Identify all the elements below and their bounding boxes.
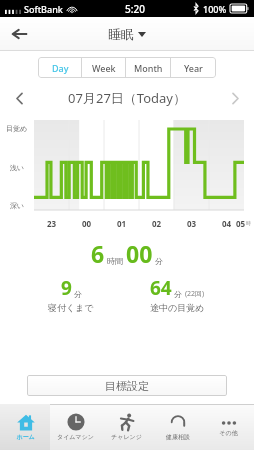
staticText: その他 [219,429,238,437]
staticText: 00 [82,218,92,229]
staticText: Day [52,62,69,74]
staticText: 途中の目覚め [150,302,205,313]
button[interactable]: Week [82,57,126,78]
button[interactable]: Month [126,57,171,78]
staticText: 23 [47,218,57,229]
button[interactable]: ホーム [0,404,50,450]
staticText: (22回) [185,289,205,299]
staticText: 分 [155,256,163,266]
staticText: 時 [246,220,251,226]
staticText: 深い [10,201,25,210]
staticText: タイムマシン [57,433,94,441]
staticText: 100% [203,3,227,15]
staticText: 目標設定 [105,379,149,393]
staticText: 01 [117,218,127,229]
button[interactable]: チャレンジ [101,404,152,450]
staticText: 05 [236,218,246,229]
staticText: 02 [152,218,162,229]
staticText: Year [184,62,203,74]
staticText: 64 [150,275,172,301]
button[interactable]: Day [38,57,82,78]
staticText: チャレンジ [111,433,142,441]
staticText: 07月27日（Today） [68,89,186,107]
staticText: Month [134,62,163,74]
button[interactable]: その他 [203,404,254,450]
staticText: 9 [61,275,72,301]
button[interactable]: Next day [224,87,246,109]
staticText: 00 [126,238,153,269]
staticText: 03 [187,218,197,229]
staticText: 04 [222,218,232,229]
button[interactable]: 健康相談 [152,404,203,450]
button[interactable]: Year [171,57,216,78]
staticText: 分 [74,289,82,299]
staticText: 6 [91,238,105,269]
staticText: 目覚め [6,124,28,133]
staticText: 5:20 [125,2,145,16]
button[interactable]: 睡眠 [108,26,146,42]
staticText: 分 [174,289,182,299]
button[interactable]: 目標設定 [27,375,227,396]
staticText: Week [92,62,116,74]
button[interactable]: Previous day [8,87,30,109]
staticText: 浅い [10,163,25,172]
button[interactable]: Back [6,20,34,48]
staticText: 健康相談 [166,433,190,441]
staticText: 睡眠 [108,26,134,42]
staticText: 寝付くまで [48,302,94,313]
button[interactable]: タイムマシン [50,404,101,450]
staticText: SoftBank [24,3,63,15]
staticText: ホーム [16,433,35,441]
staticText: 時間 [107,256,123,266]
